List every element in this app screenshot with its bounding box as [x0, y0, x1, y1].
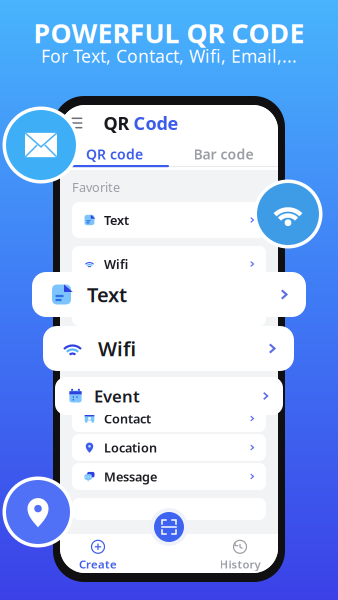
staticText: For Text, Contact, Wifi, Email,...: [41, 44, 297, 68]
staticText: Wifi: [104, 343, 128, 361]
staticText: Wifi: [98, 335, 136, 362]
button[interactable]: Wifi: [72, 246, 266, 282]
button[interactable]: Bar code: [169, 141, 278, 167]
staticText: Text: [87, 281, 127, 308]
staticText: Text: [104, 382, 129, 400]
staticText: QR: [103, 111, 129, 135]
staticText: Event: [94, 385, 140, 407]
staticText: Event: [104, 299, 138, 317]
staticText: Bar code: [193, 144, 253, 164]
button[interactable]: Wifi: [43, 326, 294, 371]
button[interactable]: Text: [72, 202, 266, 238]
staticText: Favorite: [72, 178, 120, 196]
button[interactable]: Menu: [70, 116, 84, 130]
staticText: Create: [79, 556, 117, 572]
staticText: POWERFUL QR CODE: [33, 15, 304, 51]
button[interactable]: History: [205, 540, 275, 572]
staticText: QR code: [86, 144, 143, 164]
staticText: History: [219, 556, 260, 572]
staticText: Code: [133, 111, 178, 135]
staticText: Text: [104, 211, 129, 229]
staticText: Contact: [104, 410, 151, 427]
staticText: Message: [104, 468, 157, 485]
button[interactable]: Location: [72, 434, 266, 461]
button[interactable]: Text: [72, 378, 266, 404]
staticText: Location: [104, 439, 157, 456]
button[interactable]: Contact: [72, 405, 266, 432]
button[interactable]: Message: [72, 463, 266, 490]
button[interactable]: QR code: [60, 141, 169, 167]
button[interactable]: Text: [32, 272, 306, 317]
button[interactable]: Event: [72, 290, 266, 326]
button[interactable]: Event: [55, 377, 283, 415]
staticText: Wifi: [104, 255, 128, 273]
button[interactable]: Create: [63, 540, 133, 572]
button[interactable]: Wifi: [72, 334, 266, 370]
button[interactable]: Scan: [150, 508, 188, 546]
